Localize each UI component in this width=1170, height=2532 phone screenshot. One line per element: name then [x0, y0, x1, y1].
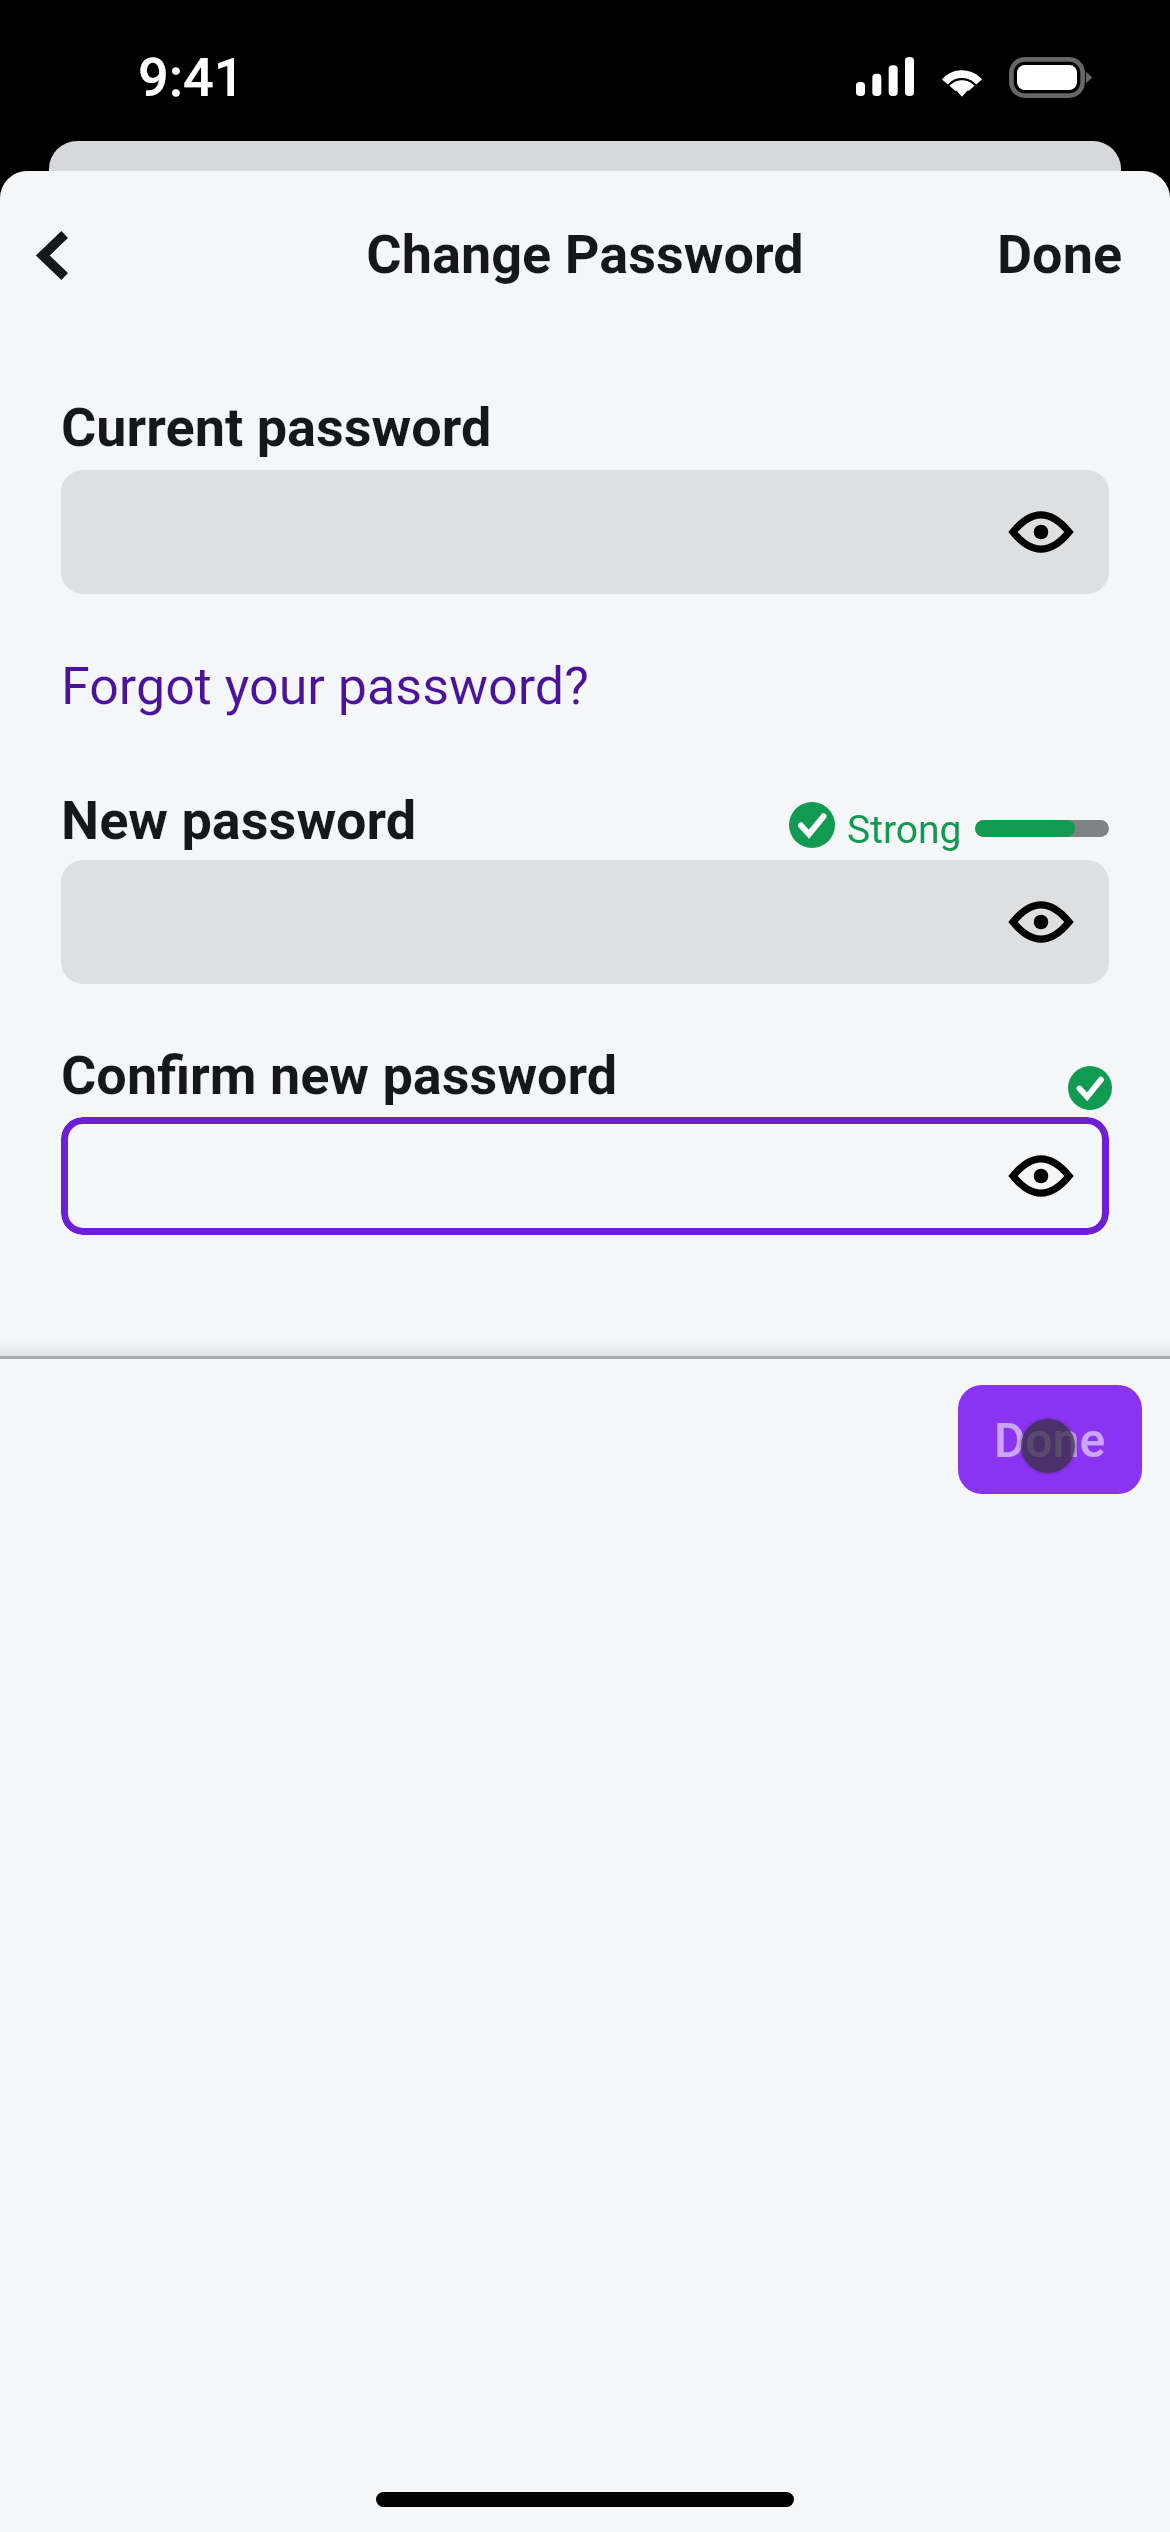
button[interactable]: Show password	[61, 470, 1109, 594]
button[interactable]: Show password	[1001, 882, 1081, 962]
button[interactable]: Show password	[61, 1117, 1109, 1235]
button[interactable]: Done	[958, 1385, 1142, 1494]
button[interactable]: Back	[4, 207, 100, 303]
staticText: Done	[994, 1412, 1106, 1468]
staticText: Strong	[847, 807, 962, 853]
staticText: Current password	[61, 396, 492, 459]
staticText: Confirm new password	[61, 1044, 618, 1107]
staticText: 9:41	[138, 46, 245, 109]
button[interactable]: Show password	[1001, 1136, 1081, 1216]
staticText: Done	[997, 223, 1123, 286]
button[interactable]: Show password	[61, 860, 1109, 984]
button[interactable]: Show password	[1001, 492, 1081, 572]
staticText: New password	[61, 789, 417, 852]
staticText: Change Password	[366, 223, 804, 286]
button[interactable]: Forgot your password?	[61, 656, 589, 717]
button[interactable]: Done	[957, 203, 1170, 306]
staticText: Forgot your password?	[61, 656, 589, 717]
